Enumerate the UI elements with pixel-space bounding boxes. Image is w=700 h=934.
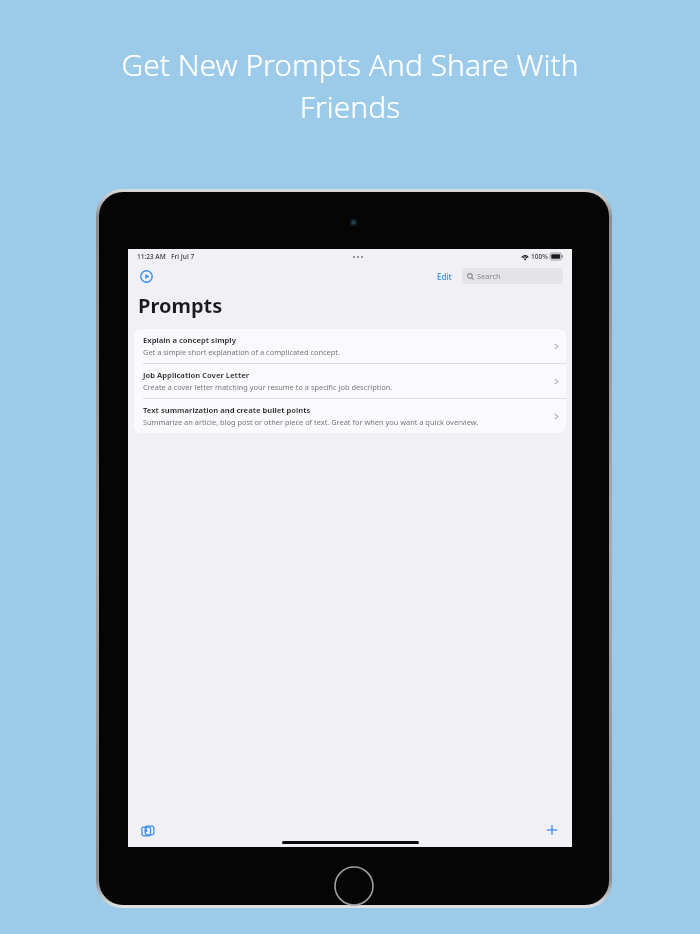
staticText: Get a simple short explanation of a comp… [143, 347, 340, 357]
staticText: Get New Prompts And Share With Friends [70, 44, 630, 127]
button[interactable]: Edit [433, 269, 456, 284]
button[interactable]: Text summarization and create bullet poi… [134, 399, 566, 433]
staticText: Create a cover letter matching your resu… [143, 382, 393, 392]
button[interactable]: Search [462, 268, 563, 284]
staticText: Prompts [138, 292, 223, 319]
staticText: 11:23 AM [137, 252, 166, 261]
staticText: Explain a concept simply [143, 335, 236, 345]
staticText: Text summarization and create bullet poi… [143, 405, 311, 415]
staticText: Summarize an article, blog post or other… [143, 417, 479, 427]
staticText: Fri Jul 7 [171, 252, 195, 261]
button[interactable]: Run prompt [137, 267, 155, 285]
staticText: 100% [531, 252, 548, 261]
button[interactable]: Add prompt [542, 820, 562, 840]
button[interactable]: Job Application Cover Letter [134, 364, 566, 398]
staticText: Job Application Cover Letter [143, 370, 250, 380]
button[interactable]: Import prompt [138, 820, 158, 840]
staticText: Search [477, 271, 501, 281]
staticText: Edit [437, 271, 452, 282]
button[interactable]: Explain a concept simply [134, 329, 566, 363]
